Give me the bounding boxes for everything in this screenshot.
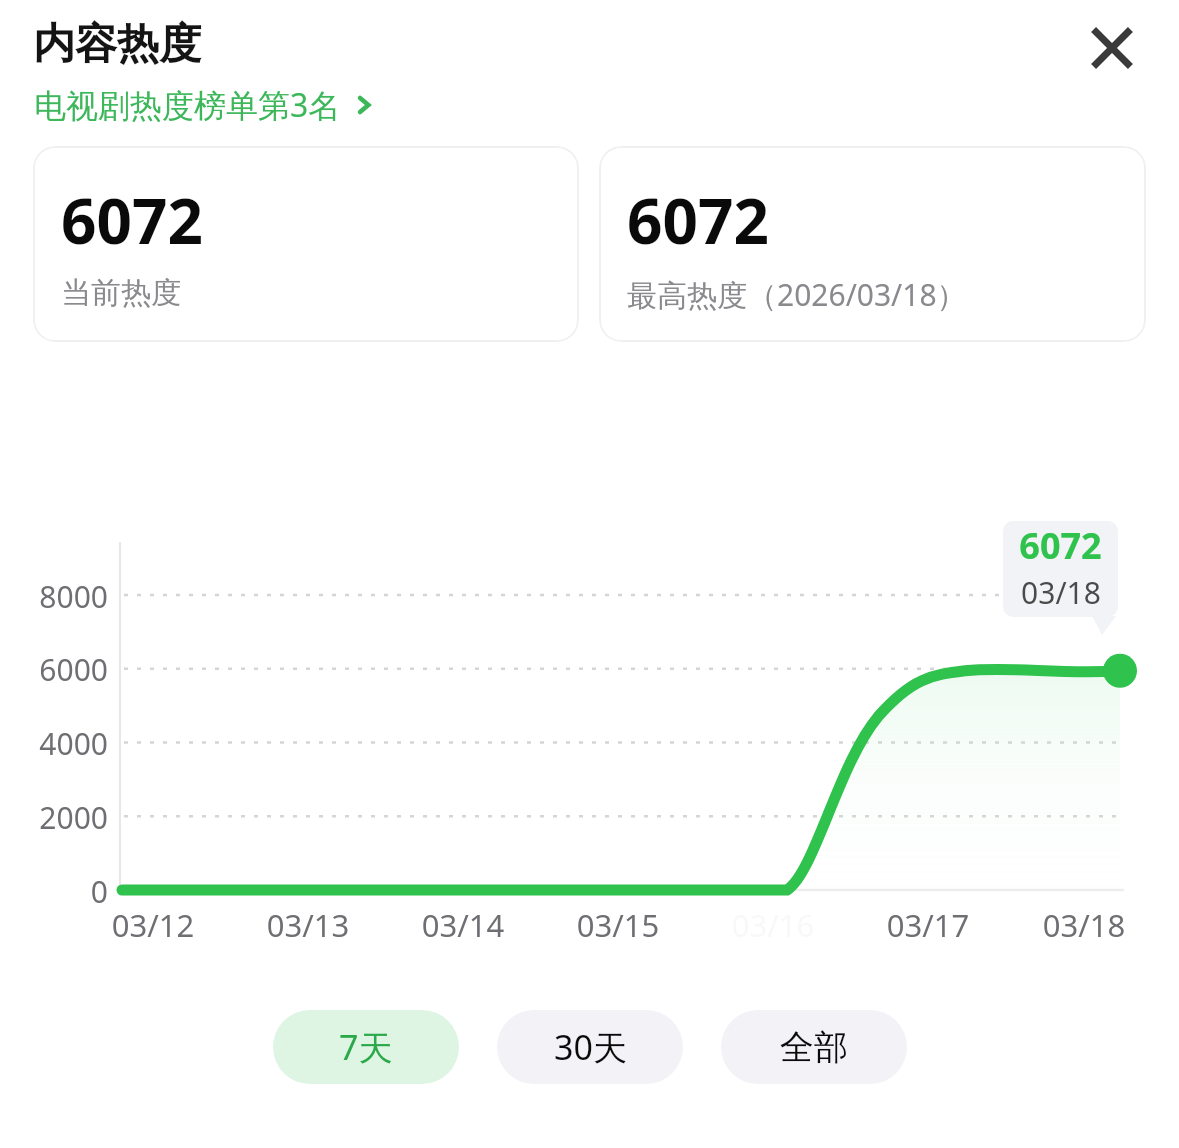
staticText: 6072 [627, 178, 769, 262]
staticText: 全部 [780, 1026, 848, 1069]
staticText: 2000 [0, 797, 108, 838]
staticText: 03/15 [548, 904, 688, 946]
staticText: 30天 [554, 1024, 627, 1070]
staticText: 6072 [1019, 521, 1102, 570]
button[interactable]: Close [1074, 10, 1150, 86]
staticText: 0 [0, 871, 108, 912]
staticText: 03/13 [238, 904, 378, 946]
button[interactable]: 6072 [599, 146, 1146, 342]
staticText: 7天 [339, 1024, 393, 1070]
staticText: 03/17 [858, 904, 998, 946]
button[interactable]: 6072 [33, 146, 579, 342]
staticText: 03/12 [83, 904, 223, 946]
staticText: 03/18 [1021, 572, 1101, 613]
staticText: 最高热度（2026/03/18） [627, 274, 967, 315]
staticText: 03/14 [393, 904, 533, 946]
staticText: 电视剧热度榜单第3名 [34, 83, 341, 127]
staticText: 当前热度 [61, 274, 181, 312]
staticText: 6000 [0, 649, 108, 690]
staticText: 8000 [0, 576, 108, 617]
staticText: 03/18 [1014, 904, 1154, 946]
staticText: 4000 [0, 723, 108, 764]
button[interactable]: 30天 [497, 1010, 683, 1084]
staticText: 6072 [61, 178, 203, 262]
staticText: 内容热度 [33, 18, 201, 71]
button[interactable]: 全部 [721, 1010, 907, 1084]
button[interactable]: 电视剧热度榜单第3名 [33, 81, 376, 129]
button[interactable]: 7天 [273, 1010, 459, 1084]
